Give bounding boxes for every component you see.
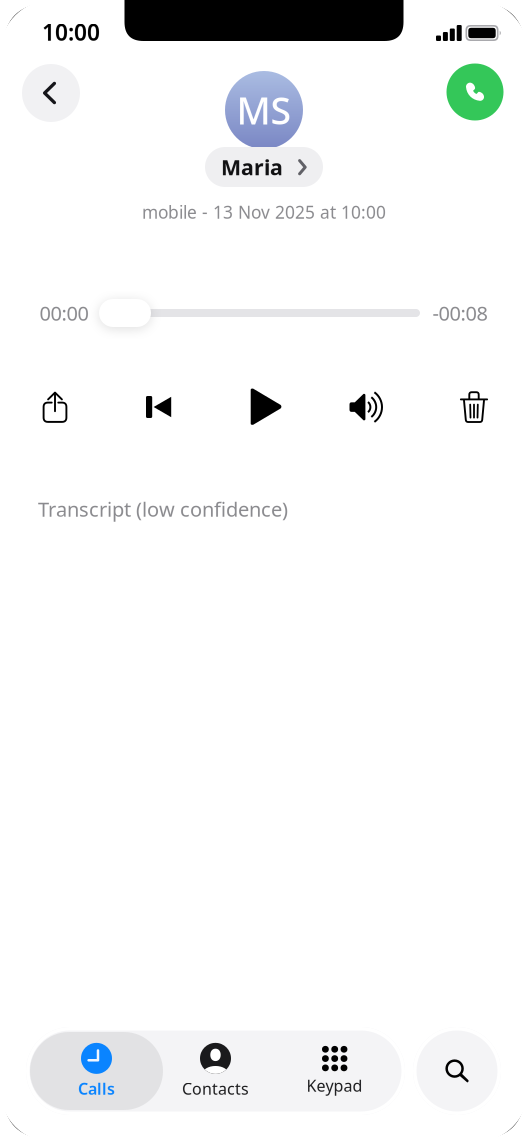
button[interactable]: Rewind xyxy=(131,379,187,435)
staticText: 10:00 xyxy=(42,17,100,47)
staticText: Maria xyxy=(221,153,283,181)
button[interactable]: Back xyxy=(22,64,80,122)
staticText: Contacts xyxy=(182,1078,249,1099)
button[interactable]: Speaker xyxy=(340,379,396,435)
button[interactable]: Keypad xyxy=(268,1032,401,1110)
button[interactable]: Call Maria xyxy=(446,63,503,120)
staticText: mobile - 13 Nov 2025 at 10:00 xyxy=(142,200,386,223)
button[interactable]: Contacts xyxy=(149,1032,282,1110)
button[interactable]: Search xyxy=(413,1027,501,1115)
staticText: -00:08 xyxy=(432,300,487,326)
button[interactable]: Delete xyxy=(446,379,502,435)
staticText: Calls xyxy=(78,1078,115,1099)
staticText: Transcript (low confidence) xyxy=(38,496,288,522)
button[interactable]: Calls xyxy=(30,1032,163,1110)
staticText: MS xyxy=(236,85,291,135)
button[interactable]: Share xyxy=(27,379,83,435)
staticText: 00:00 xyxy=(39,300,88,326)
button[interactable]: Maria xyxy=(205,147,323,187)
button[interactable]: Play xyxy=(238,379,294,435)
staticText: Keypad xyxy=(306,1075,362,1096)
